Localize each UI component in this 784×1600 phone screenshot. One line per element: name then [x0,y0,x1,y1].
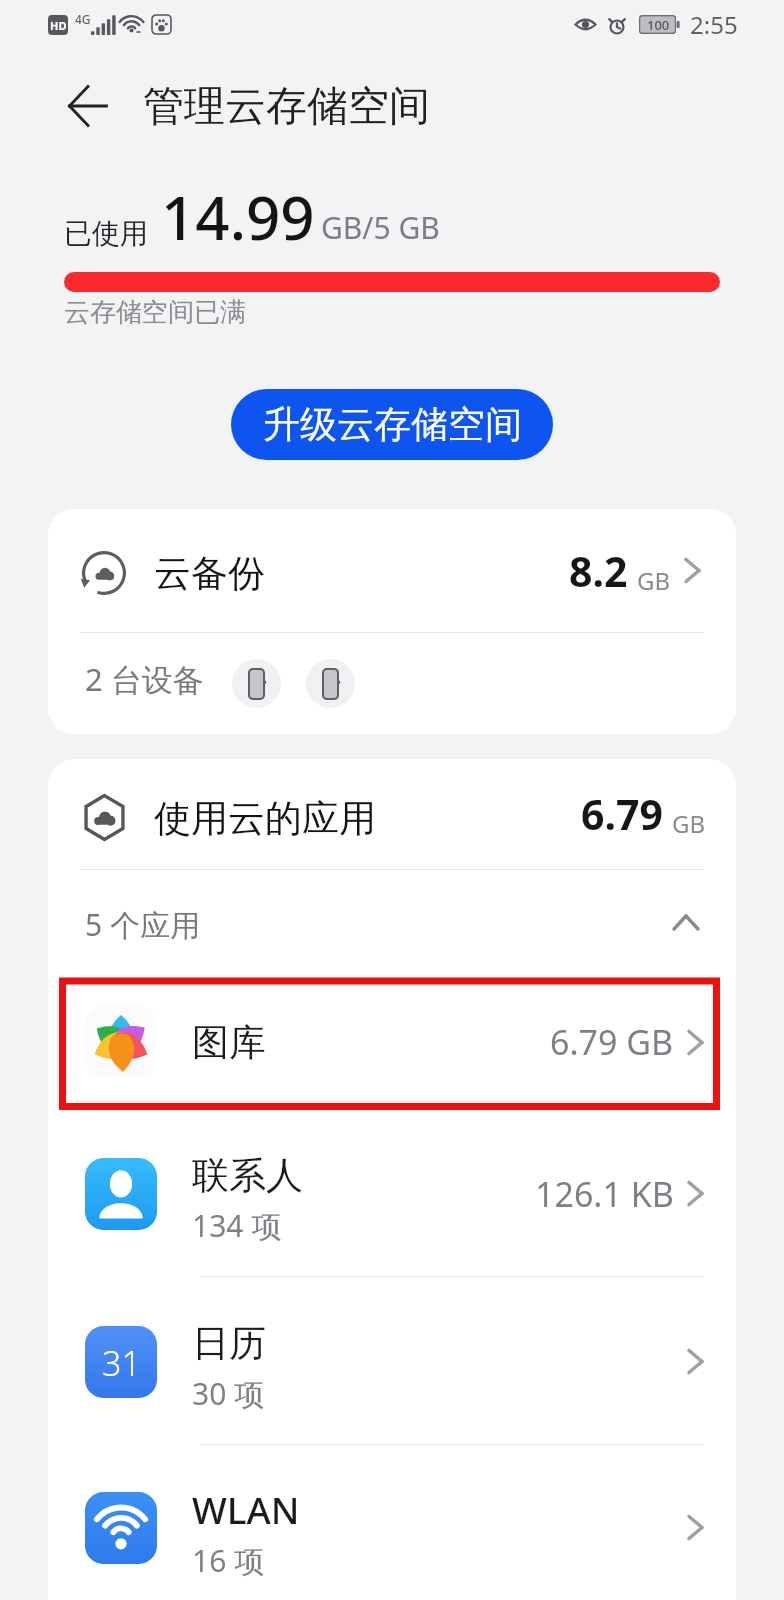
staticText: 云备份 [154,550,265,597]
staticText: 6.79 GB [550,1019,674,1065]
button[interactable]: 图库 [48,974,736,1110]
staticText: 8.2 [569,543,628,599]
button[interactable]: Back [52,70,124,142]
staticText: 已使用 [64,216,148,251]
staticText: HD [50,18,67,33]
button[interactable]: 云备份 [48,509,736,632]
staticText: 4G [75,11,91,27]
button[interactable]: 升级云存储空间 [231,389,553,460]
staticText: 使用云的应用 [154,795,376,842]
staticText: 31 [102,1340,141,1386]
staticText: 升级云存储空间 [263,401,522,448]
button[interactable]: WLAN [48,1444,736,1600]
staticText: 100 [647,16,670,34]
staticText: 2 台设备 [85,658,204,700]
staticText: 联系人 [192,1152,303,1199]
staticText: GB [672,807,706,840]
button[interactable]: 使用云的应用 [48,759,736,869]
staticText: 16 项 [192,1540,265,1581]
button[interactable]: Collapse app list [666,902,706,942]
staticText: 图库 [192,1019,266,1066]
staticText: 126.1 KB [535,1171,674,1217]
staticText: 2:55 [690,8,738,41]
staticText: GB [637,564,671,597]
staticText: 云存储空间已满 [64,296,246,329]
staticText: 6.79 [581,786,663,842]
button[interactable]: 2 台设备 [48,633,736,734]
staticText: 日历 [192,1320,266,1367]
button[interactable]: 联系人 [48,1110,736,1277]
staticText: 30 项 [192,1373,265,1414]
staticText: GB/5 GB [321,207,440,248]
button[interactable]: 31 [48,1278,736,1445]
staticText: 134 项 [192,1205,282,1246]
staticText: WLAN [192,1484,300,1534]
staticText: 5 个应用 [85,904,200,945]
staticText: 14.99 [161,176,315,258]
button[interactable]: 5 个应用 [48,870,736,970]
staticText: 管理云存储空间 [143,81,430,133]
